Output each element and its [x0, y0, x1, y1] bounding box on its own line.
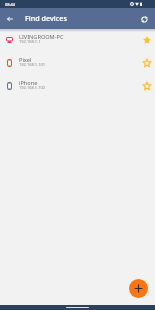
button[interactable]: Back [3, 12, 17, 26]
button[interactable]: Refresh [138, 13, 151, 26]
staticText: 192.168.1.101 [19, 62, 46, 67]
button[interactable]: Favorite [141, 80, 153, 92]
button[interactable]: Pixel [0, 52, 155, 75]
staticText: 192.168.1.1 [19, 39, 41, 44]
button[interactable]: LIVINGROOM-PC [0, 29, 155, 52]
staticText: iPhone [19, 79, 38, 87]
staticText: Find devices [25, 13, 67, 23]
staticText: 08:44 [5, 2, 15, 7]
staticText: 192.168.1.102 [19, 85, 46, 90]
staticText: LIVINGROOM-PC [19, 33, 64, 41]
button[interactable]: Favorite [141, 57, 153, 69]
button[interactable]: Add device [129, 279, 148, 298]
button[interactable]: iPhone [0, 75, 155, 98]
button[interactable]: Favorite [141, 34, 153, 46]
staticText: Pixel [19, 56, 32, 64]
